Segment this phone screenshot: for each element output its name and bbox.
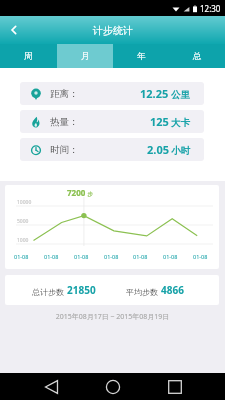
staticText: 01-08: [193, 253, 208, 260]
staticText: 2.05: [147, 142, 169, 157]
staticText: 年: [137, 51, 146, 62]
staticText: 12:30: [200, 3, 221, 14]
staticText: 总计步数: [32, 287, 64, 297]
staticText: 21850: [67, 283, 96, 297]
staticText: 总: [193, 51, 202, 62]
staticText: 10000: [17, 199, 32, 206]
button[interactable]: 周: [0, 44, 57, 68]
button[interactable]: 热量：: [20, 110, 204, 133]
staticText: 2015年08月17日 ~ 2015年08月19日: [0, 312, 225, 322]
button[interactable]: Recent apps: [155, 373, 195, 400]
staticText: 4866: [161, 283, 184, 297]
staticText: 计步统计: [93, 24, 133, 37]
staticText: 125: [150, 114, 169, 129]
staticText: 12.25: [140, 86, 169, 101]
staticText: 步: [86, 190, 93, 198]
button[interactable]: Home: [93, 373, 133, 400]
button[interactable]: 月: [57, 44, 113, 68]
staticText: 5000: [17, 218, 29, 225]
staticText: 公里: [171, 89, 190, 101]
staticText: 热量：: [50, 116, 79, 128]
staticText: 1000: [17, 237, 29, 244]
staticText: 月: [81, 51, 90, 62]
staticText: 时间：: [50, 144, 79, 156]
staticText: 距离：: [50, 88, 79, 100]
button[interactable]: 年: [113, 44, 169, 68]
button[interactable]: Back: [0, 16, 28, 44]
staticText: 大卡: [171, 117, 190, 129]
staticText: 01-08: [133, 253, 148, 260]
button[interactable]: 距离：: [20, 82, 204, 105]
staticText: 周: [24, 51, 33, 62]
staticText: 01-08: [163, 253, 178, 260]
staticText: 7200: [67, 187, 86, 198]
button[interactable]: 时间：: [20, 138, 204, 161]
staticText: 01-08: [14, 253, 29, 260]
staticText: 01-08: [74, 253, 89, 260]
staticText: 平均步数: [126, 287, 158, 297]
staticText: 01-08: [44, 253, 59, 260]
button[interactable]: 总: [169, 44, 225, 68]
button[interactable]: Back: [31, 373, 71, 400]
staticText: 小时: [171, 145, 190, 157]
staticText: 01-08: [104, 253, 119, 260]
